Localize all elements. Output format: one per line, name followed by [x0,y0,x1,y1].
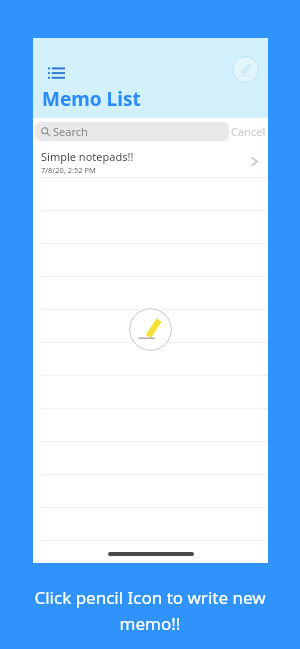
staticText: Click pencil Icon to write new memo!! [14,586,286,635]
staticText: Search [53,124,88,139]
button[interactable]: New memo [232,56,259,83]
button[interactable]: Search [35,122,229,141]
staticText: Cancel [231,124,266,139]
staticText: Memo List [42,86,141,112]
staticText: Simple notepads!! [41,149,134,164]
staticText: 7/8/20, 2:52 PM [41,165,96,175]
button[interactable]: Simple notepads!! [33,145,268,178]
button[interactable]: List options [45,63,67,85]
button[interactable]: Cancel [229,118,268,145]
button[interactable]: Write new memo [129,308,172,351]
